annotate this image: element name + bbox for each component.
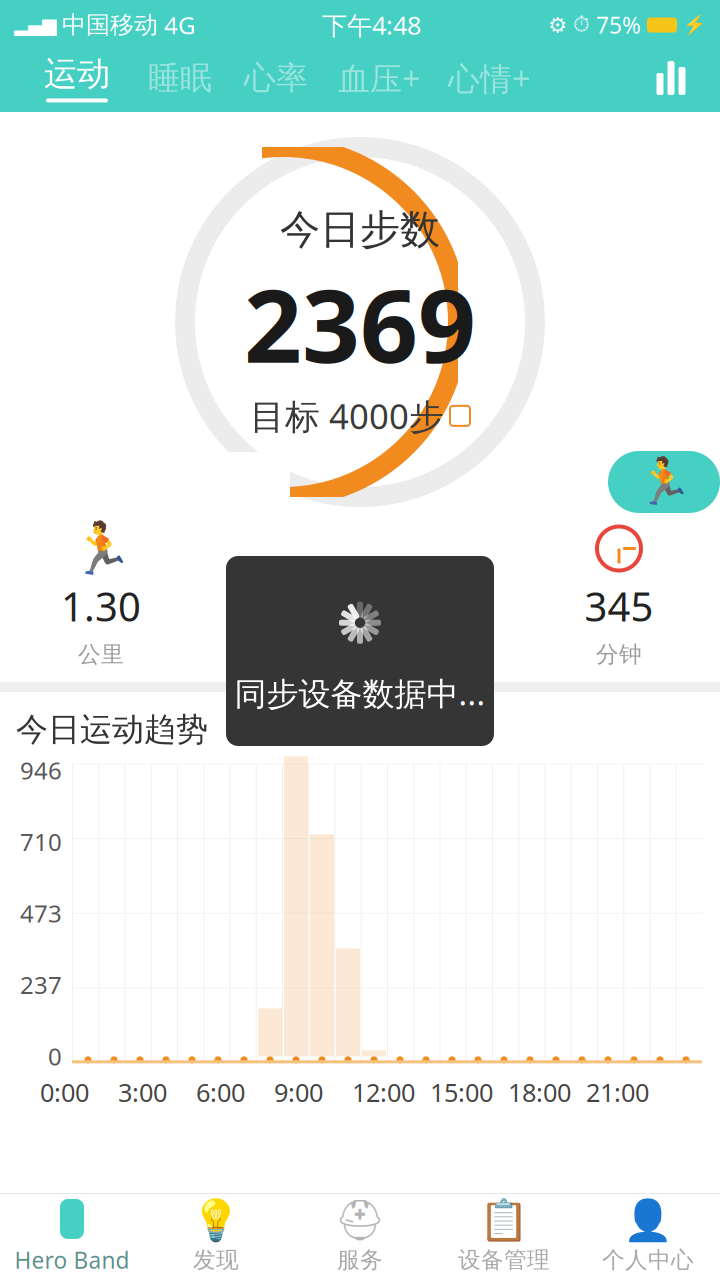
- staticText: 4G: [164, 9, 195, 41]
- staticText: 15:00: [430, 1075, 493, 1109]
- staticText: 🏃: [69, 520, 132, 577]
- staticText: 发现: [193, 1246, 239, 1274]
- staticText: ⛑: [334, 1197, 385, 1243]
- staticText: 同步设备数据中...: [234, 672, 485, 714]
- staticText: 中国移动: [62, 10, 158, 40]
- staticText: 946: [20, 754, 62, 786]
- button[interactable]: Hero Band: [0, 1194, 144, 1280]
- button[interactable]: Statistics: [636, 47, 706, 109]
- button[interactable]: 👤: [576, 1194, 720, 1280]
- staticText: ⚡: [683, 14, 706, 36]
- staticText: 2369: [244, 256, 476, 391]
- staticText: 服务: [337, 1246, 383, 1274]
- staticText: 3:00: [118, 1075, 167, 1109]
- staticText: 心率: [244, 58, 308, 98]
- staticText: 目标 4000步: [250, 393, 444, 439]
- staticText: 💡: [191, 1197, 241, 1243]
- staticText: 345: [584, 579, 653, 633]
- staticText: 710: [20, 826, 62, 858]
- button[interactable]: 心情+: [434, 47, 544, 109]
- button[interactable]: 运动: [22, 47, 132, 109]
- staticText: 9:00: [274, 1075, 323, 1109]
- staticText: 心情+: [448, 57, 530, 99]
- staticText: 📋: [479, 1197, 529, 1243]
- button[interactable]: 血压+: [324, 47, 434, 109]
- staticText: 公里: [78, 641, 124, 668]
- staticText: 分钟: [596, 641, 642, 668]
- staticText: ▂▄▆: [14, 14, 56, 36]
- staticText: 12:00: [352, 1075, 415, 1109]
- staticText: Hero Band: [14, 1245, 129, 1275]
- button[interactable]: Start workout: [608, 451, 720, 513]
- staticText: ⏱: [573, 15, 590, 35]
- button[interactable]: 心率: [228, 47, 324, 109]
- staticText: 473: [20, 897, 62, 929]
- button[interactable]: ⛑: [288, 1194, 432, 1280]
- staticText: 0: [48, 1040, 62, 1072]
- button[interactable]: 睡眠: [132, 47, 228, 109]
- staticText: 1.30: [61, 579, 141, 633]
- staticText: 今日步数: [280, 205, 440, 254]
- staticText: 睡眠: [148, 58, 212, 98]
- staticText: 75%: [596, 10, 641, 40]
- staticText: 🏃: [636, 456, 692, 508]
- staticText: 6:00: [196, 1075, 245, 1109]
- staticText: 237: [20, 969, 62, 1001]
- staticText: 今日运动趋势: [16, 710, 208, 749]
- staticText: 下午4:48: [322, 8, 421, 42]
- staticText: 0:00: [40, 1075, 89, 1109]
- button[interactable]: 💡: [144, 1194, 288, 1280]
- staticText: 血压+: [338, 57, 420, 99]
- staticText: 18:00: [508, 1075, 571, 1109]
- staticText: 👤: [623, 1197, 673, 1243]
- staticText: ⚙: [548, 13, 567, 37]
- staticText: 运动: [44, 53, 110, 94]
- staticText: 设备管理: [458, 1246, 550, 1274]
- button[interactable]: 📋: [432, 1194, 576, 1280]
- staticText: 个人中心: [602, 1246, 694, 1274]
- staticText: 21:00: [586, 1075, 649, 1109]
